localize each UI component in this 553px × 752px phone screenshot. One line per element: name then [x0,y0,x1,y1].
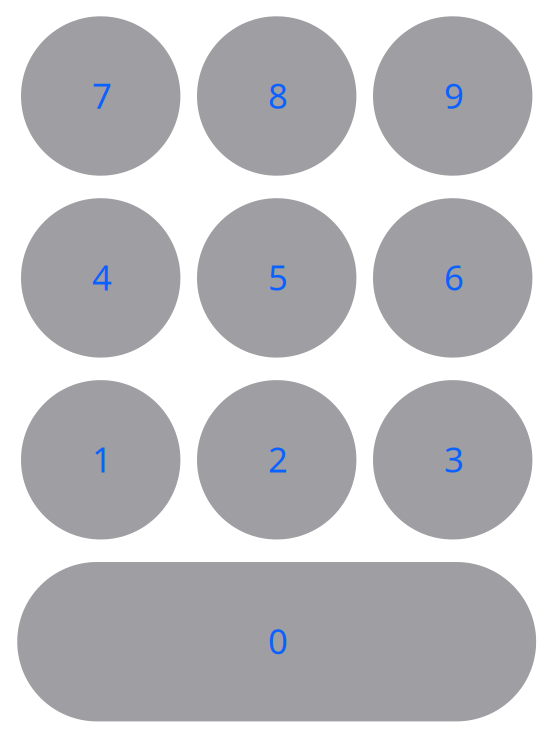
staticText: 5 [268,254,288,300]
staticText: 3 [444,436,464,482]
button[interactable]: 6 [373,198,532,358]
staticText: 7 [92,72,112,118]
staticText: 9 [444,72,464,118]
staticText: 1 [92,436,112,482]
button[interactable]: 1 [21,380,180,539]
staticText: 0 [268,618,288,664]
staticText: 4 [92,254,112,300]
button[interactable]: 7 [21,16,180,176]
staticText: 2 [268,436,288,482]
button[interactable]: 8 [197,16,356,176]
button[interactable]: 0 [17,562,536,721]
staticText: 8 [268,72,288,118]
button[interactable]: 3 [373,380,532,539]
button[interactable]: 2 [197,380,356,539]
button[interactable]: 9 [373,16,532,176]
staticText: 6 [444,254,464,300]
button[interactable]: 4 [21,198,180,358]
button[interactable]: 5 [197,198,356,358]
